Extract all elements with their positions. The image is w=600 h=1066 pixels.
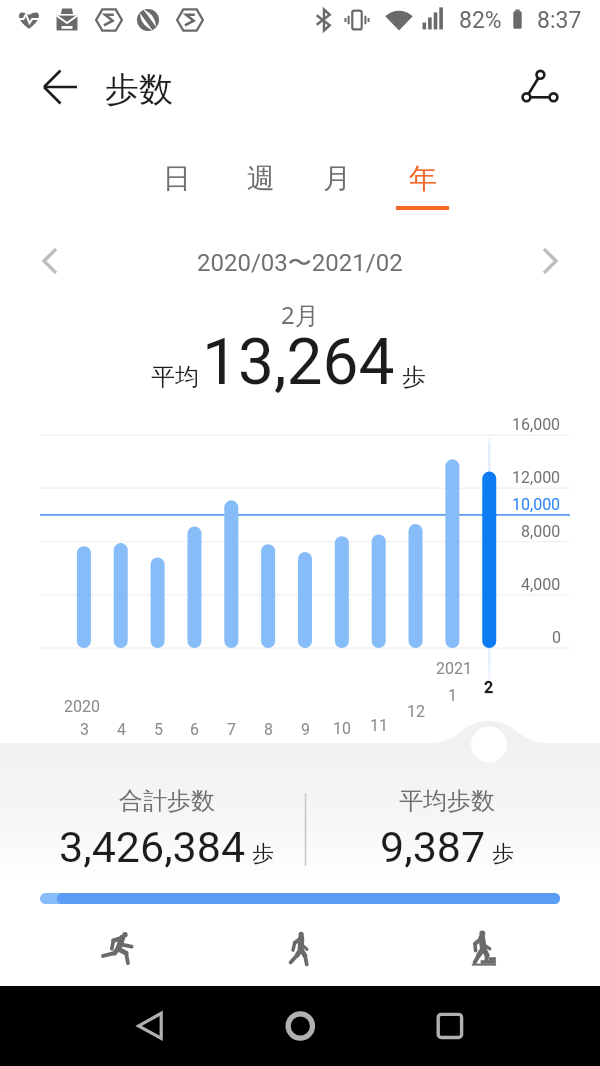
staticText: 4,000 — [521, 575, 561, 594]
staticText: 平均 — [151, 362, 199, 392]
staticText: 9,387 — [380, 822, 486, 872]
staticText: 6 — [190, 720, 199, 739]
button[interactable]: Walking — [253, 913, 345, 983]
staticText: 2月 — [281, 298, 319, 331]
button[interactable]: Next period — [528, 237, 574, 283]
staticText: 週 — [247, 161, 275, 196]
button[interactable]: 日 — [141, 152, 213, 214]
staticText: 12 — [407, 702, 425, 721]
button[interactable]: Stairs — [436, 913, 528, 983]
staticText: 8 — [264, 720, 273, 739]
staticText: 82% — [459, 7, 502, 34]
button[interactable]: Previous period — [26, 237, 72, 283]
button[interactable]: Share — [512, 62, 566, 116]
staticText: 2021 — [436, 659, 472, 678]
staticText: 16,000 — [512, 415, 561, 434]
staticText: 2020/03〜2021/02 — [197, 248, 403, 278]
staticText: 13,264 — [202, 325, 395, 400]
staticText: 月 — [323, 161, 351, 196]
staticText: 7 — [227, 720, 236, 739]
staticText: 5 — [154, 720, 163, 739]
staticText: 4 — [117, 720, 126, 739]
button[interactable]: Home — [260, 986, 340, 1066]
staticText: 9 — [301, 720, 310, 739]
staticText: 平均歩数 — [399, 786, 495, 816]
staticText: 11 — [370, 716, 388, 735]
staticText: 歩 — [402, 362, 426, 392]
staticText: 10 — [333, 719, 351, 738]
staticText: 年 — [409, 161, 437, 196]
button[interactable]: 年 — [386, 152, 458, 214]
button[interactable]: 週 — [225, 152, 297, 214]
staticText: 12,000 — [512, 468, 561, 487]
staticText: 2020 — [64, 697, 100, 716]
staticText: 3,426,384 — [59, 822, 246, 872]
staticText: 10,000 — [512, 495, 561, 514]
button[interactable]: Back — [110, 986, 190, 1066]
staticText: 日 — [163, 161, 191, 196]
staticText: 0 — [552, 628, 561, 647]
button[interactable]: Recents — [410, 986, 490, 1066]
staticText: 3 — [80, 720, 89, 739]
staticText: 合計歩数 — [119, 786, 215, 816]
staticText: 歩 — [492, 840, 514, 868]
staticText: 8,000 — [521, 522, 561, 541]
button[interactable]: Running — [72, 913, 164, 983]
staticText: 1 — [448, 686, 457, 705]
staticText: 8:37 — [537, 7, 582, 34]
staticText: 歩数 — [105, 68, 173, 111]
staticText: 歩 — [252, 840, 274, 868]
button[interactable]: Back — [36, 61, 88, 113]
button[interactable]: 月 — [301, 152, 373, 214]
staticText: 2 — [484, 678, 494, 697]
